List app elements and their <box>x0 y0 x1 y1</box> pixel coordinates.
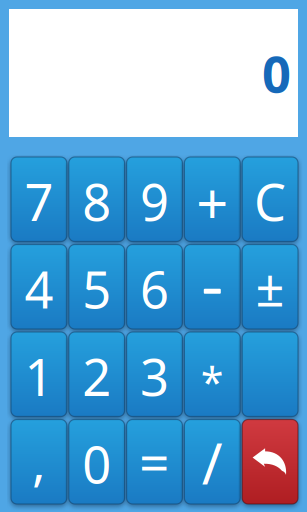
staticText: + <box>196 165 228 239</box>
button[interactable]: 1 <box>11 332 67 416</box>
button[interactable]: = <box>127 419 182 504</box>
button[interactable]: Backspace <box>242 419 298 504</box>
staticText: = <box>139 426 170 497</box>
staticText: 2 <box>82 343 111 410</box>
button[interactable]: 5 <box>69 244 125 329</box>
button[interactable]: * <box>184 332 240 416</box>
staticText: C <box>254 168 286 235</box>
button[interactable]: 0 <box>69 419 125 504</box>
staticText: 3 <box>140 343 169 410</box>
button[interactable]: Minus <box>184 244 240 329</box>
staticText: 4 <box>24 255 53 322</box>
button[interactable]: / <box>184 419 240 504</box>
button[interactable]: 7 <box>11 157 67 241</box>
staticText: 6 <box>140 255 169 322</box>
button[interactable]: C <box>242 157 298 241</box>
button[interactable] <box>242 332 298 416</box>
staticText: , <box>32 427 46 494</box>
button[interactable]: + <box>184 157 240 241</box>
staticText: / <box>202 426 223 500</box>
staticText: 7 <box>24 168 53 235</box>
staticText: 0 <box>82 430 111 497</box>
staticText: 8 <box>82 168 111 235</box>
staticText: ± <box>256 253 285 320</box>
staticText: 9 <box>140 168 169 235</box>
button[interactable]: 4 <box>11 244 67 329</box>
button[interactable]: ± <box>242 244 298 329</box>
button[interactable]: , <box>11 419 67 504</box>
staticText: 0 <box>262 39 291 107</box>
button[interactable]: 3 <box>127 332 182 416</box>
button[interactable]: 9 <box>127 157 182 241</box>
button[interactable]: 6 <box>127 244 182 329</box>
button[interactable]: 2 <box>69 332 125 416</box>
button[interactable]: 8 <box>69 157 125 241</box>
staticText: * <box>201 354 224 409</box>
staticText: 1 <box>24 343 53 410</box>
staticText: 5 <box>82 255 111 322</box>
